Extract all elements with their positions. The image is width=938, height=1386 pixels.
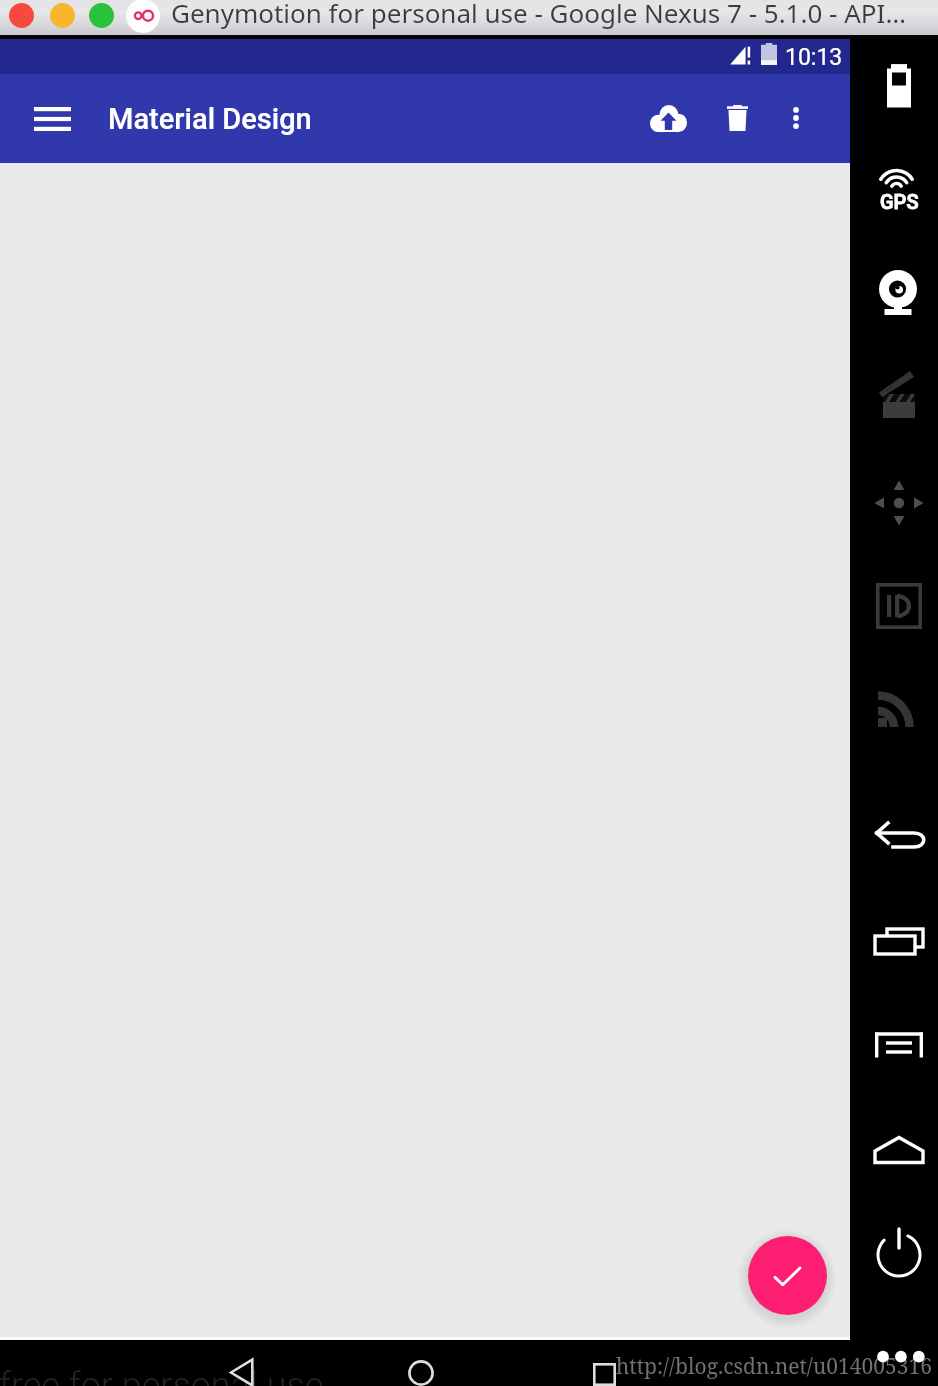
button[interactable]: Screen recording [867,363,931,427]
staticText: GPS [880,190,919,213]
button[interactable]: Recent apps [867,909,931,973]
button[interactable]: Genymotion [126,0,160,33]
button[interactable]: Minimise window [50,3,75,28]
button[interactable]: Done [748,1236,827,1315]
button[interactable]: Home [401,1353,441,1386]
button[interactable]: Upload [640,90,696,146]
button[interactable]: More options [871,1345,931,1369]
staticText: Material Design [108,102,312,136]
button[interactable]: Power [867,1220,931,1284]
button[interactable]: Delete [709,90,765,146]
staticText: 10:13 [785,44,843,71]
button[interactable]: Recent apps [584,1354,624,1386]
button[interactable]: Identifiers [867,574,931,638]
button[interactable]: More options [768,90,824,146]
button[interactable]: Virtual sensors [867,471,931,535]
button[interactable]: Open navigation drawer [16,91,88,147]
button[interactable]: GPS [867,162,931,214]
button[interactable]: Menu [867,1013,931,1077]
staticText: free for personal use [0,1365,324,1386]
button[interactable]: Home [867,1118,931,1182]
button[interactable]: Close window [9,3,34,28]
staticText: Genymotion for personal use - Google Nex… [171,0,906,30]
button[interactable]: Zoom window [89,3,114,28]
button[interactable]: Network [867,675,931,739]
button[interactable]: Battery [867,54,931,118]
button[interactable]: Camera [867,258,931,322]
button[interactable]: Back [222,1352,262,1386]
button[interactable]: Back [867,804,931,868]
staticText: http://blog.csdn.net/u014005316 [616,1352,932,1381]
